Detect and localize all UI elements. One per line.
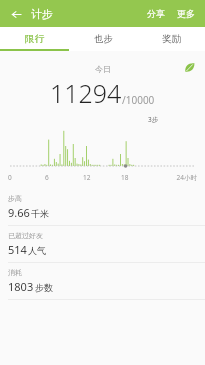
staticText: 12 bbox=[83, 173, 121, 182]
button[interactable]: Leaf bbox=[181, 59, 197, 75]
staticText: 0 bbox=[8, 173, 45, 182]
staticText: 计步 bbox=[31, 7, 53, 21]
staticText: 6 bbox=[45, 173, 83, 182]
staticText: 步数 bbox=[35, 282, 53, 293]
button[interactable]: 步高 bbox=[0, 189, 205, 225]
staticText: 步高 bbox=[8, 194, 22, 203]
staticText: 3步 bbox=[148, 115, 159, 124]
staticText: 18 bbox=[121, 173, 159, 182]
button[interactable]: 限行 bbox=[0, 27, 69, 51]
button[interactable]: 消耗 bbox=[0, 263, 205, 299]
staticText: 24小时 bbox=[159, 173, 197, 182]
button[interactable]: 更多 bbox=[173, 5, 199, 22]
staticText: 消耗 bbox=[8, 268, 22, 277]
staticText: 514 bbox=[8, 242, 27, 257]
staticText: 也步 bbox=[94, 33, 113, 45]
staticText: 11294 bbox=[50, 76, 122, 110]
staticText: 分享 bbox=[147, 8, 165, 19]
button[interactable]: 分享 bbox=[143, 5, 169, 22]
staticText: 9.66 bbox=[8, 205, 30, 220]
staticText: 已超过好友 bbox=[8, 231, 43, 240]
button[interactable]: 已超过好友 bbox=[0, 226, 205, 262]
staticText: 1803 bbox=[8, 279, 34, 294]
staticText: 奖励 bbox=[162, 33, 181, 45]
staticText: 今日 bbox=[95, 64, 111, 74]
staticText: 限行 bbox=[25, 33, 44, 45]
button[interactable]: Back bbox=[6, 4, 26, 24]
button[interactable]: 也步 bbox=[69, 27, 137, 51]
staticText: 人气 bbox=[28, 245, 46, 256]
button[interactable]: 奖励 bbox=[137, 27, 205, 51]
staticText: /10000 bbox=[122, 93, 155, 107]
staticText: 千米 bbox=[31, 208, 49, 219]
staticText: 更多 bbox=[177, 8, 195, 19]
